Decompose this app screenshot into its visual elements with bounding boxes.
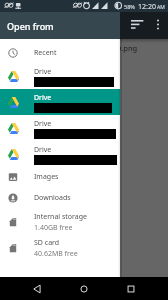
staticText: Drive bbox=[34, 145, 52, 155]
button[interactable]: Recent bbox=[0, 42, 120, 63]
button[interactable]: Drive bbox=[0, 141, 120, 167]
staticText: 0.png bbox=[117, 43, 138, 53]
button[interactable]: Drive bbox=[0, 115, 120, 141]
button[interactable]: SD card bbox=[0, 235, 120, 261]
staticText: Downloads bbox=[34, 193, 71, 203]
button[interactable]: Recent apps bbox=[124, 282, 138, 296]
staticText: Images bbox=[34, 172, 59, 182]
staticText: 40.62MB free bbox=[34, 249, 78, 259]
staticText: SD card bbox=[34, 238, 60, 248]
button[interactable]: Drive bbox=[0, 63, 120, 89]
staticText: Drive bbox=[34, 119, 52, 129]
staticText: Internal storage bbox=[34, 212, 87, 222]
staticText: Drive bbox=[34, 67, 52, 77]
button[interactable]: Downloads bbox=[0, 187, 120, 208]
staticText: 58% bbox=[124, 3, 135, 10]
staticText: AM bbox=[157, 4, 165, 11]
staticText: Open from bbox=[7, 20, 54, 32]
staticText: 1.40GB free bbox=[34, 223, 73, 233]
button[interactable]: Back bbox=[30, 282, 44, 296]
button[interactable]: Home bbox=[77, 282, 91, 296]
staticText: Recent bbox=[34, 48, 57, 58]
button[interactable]: Sort bbox=[131, 20, 144, 31]
button[interactable]: Images bbox=[0, 166, 120, 187]
staticText: Drive bbox=[34, 93, 52, 103]
button[interactable]: Drive bbox=[0, 89, 120, 115]
button[interactable]: More options bbox=[152, 19, 164, 32]
button[interactable]: Internal storage bbox=[0, 209, 120, 235]
staticText: 12:20 bbox=[138, 2, 156, 12]
